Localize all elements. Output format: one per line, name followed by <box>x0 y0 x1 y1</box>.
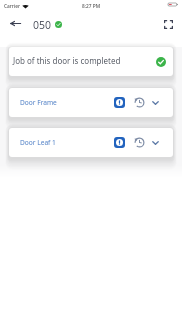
button[interactable]: Door Frame <box>9 88 173 117</box>
button[interactable]: Back <box>5 13 25 33</box>
button[interactable]: Expand <box>149 136 162 149</box>
button[interactable]: Scan <box>158 14 178 34</box>
button[interactable]: Door Leaf 1 <box>9 128 173 157</box>
button[interactable]: History <box>133 96 146 109</box>
staticText: Door Frame <box>20 98 57 107</box>
staticText: Carrier <box>4 3 20 10</box>
staticText: Job of this door is completed <box>13 55 121 66</box>
button[interactable]: Info <box>114 137 125 148</box>
staticText: 050 <box>33 18 52 32</box>
button[interactable]: Expand <box>149 96 162 109</box>
staticText: Door Leaf 1 <box>20 138 56 147</box>
staticText: 8:27 PM <box>82 3 101 10</box>
button[interactable]: Job of this door is completed <box>9 47 173 76</box>
button[interactable]: History <box>133 136 146 149</box>
button[interactable]: Info <box>114 97 125 108</box>
